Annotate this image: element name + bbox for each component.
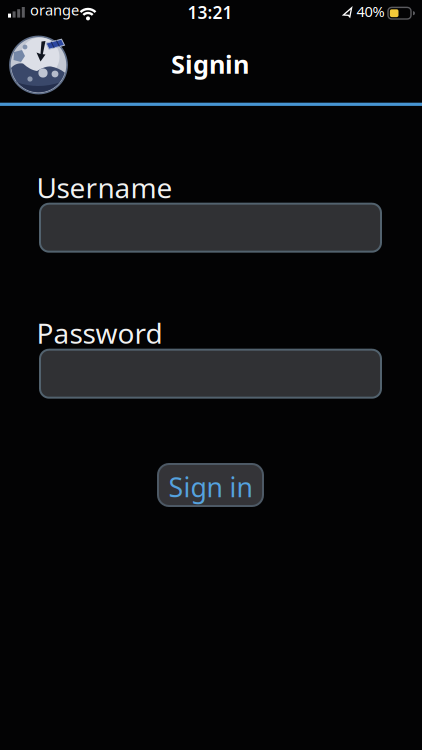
button[interactable]: Sign in xyxy=(158,464,263,506)
textField[interactable] xyxy=(52,359,381,388)
staticText: Username xyxy=(36,169,172,206)
staticText: Sign in xyxy=(168,469,252,505)
staticText: 40% xyxy=(356,2,384,21)
staticText: 13:21 xyxy=(187,1,232,24)
staticText: Password xyxy=(36,314,162,352)
staticText: Signin xyxy=(171,47,249,81)
staticText: orange xyxy=(30,0,79,20)
textField[interactable] xyxy=(52,213,381,242)
